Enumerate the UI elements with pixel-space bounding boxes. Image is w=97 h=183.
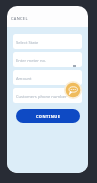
button[interactable]: Customers phone number xyxy=(13,88,82,103)
button[interactable]: Select State xyxy=(13,34,82,49)
button[interactable]: Chat with support xyxy=(64,81,82,99)
button[interactable]: CANCEL xyxy=(10,13,32,23)
staticText: CANCEL xyxy=(11,16,28,21)
staticText: Enter meter no. xyxy=(16,58,47,64)
staticText: Select State xyxy=(16,40,39,46)
button[interactable]: CONTINUE xyxy=(16,109,80,123)
staticText: CONTINUE xyxy=(36,114,61,119)
staticText: Customers phone number xyxy=(16,94,67,100)
button[interactable]: Amount xyxy=(13,70,82,85)
button[interactable]: Enter meter no. xyxy=(13,52,82,67)
staticText: Amount xyxy=(16,76,32,82)
